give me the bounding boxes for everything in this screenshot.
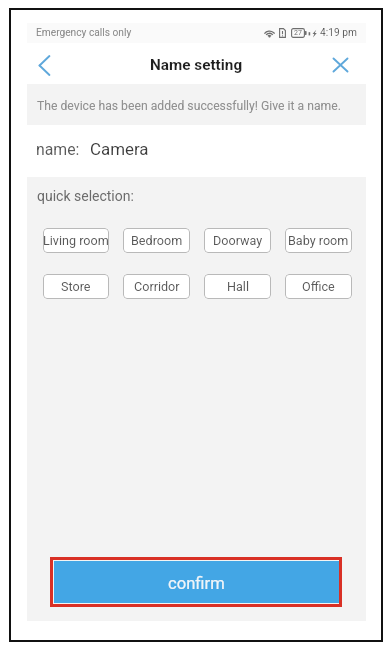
button[interactable]: Baby room <box>285 228 352 253</box>
staticText: The device has been added successfully! … <box>37 99 341 113</box>
button[interactable]: Corridor <box>123 274 190 299</box>
staticText: Name setting <box>150 56 243 74</box>
staticText: Camera <box>90 139 149 159</box>
button[interactable]: name: <box>27 125 366 177</box>
button[interactable]: Store <box>43 274 109 299</box>
button[interactable]: confirm <box>54 561 339 603</box>
staticText: Bedroom <box>131 233 183 248</box>
button[interactable]: Close <box>329 43 366 84</box>
staticText: 4:19 pm <box>320 27 357 39</box>
button[interactable]: Living room <box>43 228 109 253</box>
staticText: confirm <box>168 574 225 593</box>
button[interactable]: Bedroom <box>123 228 190 253</box>
staticText: Corridor <box>134 279 180 294</box>
staticText: Doorway <box>213 233 263 248</box>
staticText: Baby room <box>288 233 349 248</box>
staticText: name: <box>36 140 80 159</box>
button[interactable]: Office <box>285 274 352 299</box>
staticText: Hall <box>227 279 249 294</box>
staticText: Store <box>61 279 91 294</box>
staticText: 27 <box>294 29 302 37</box>
staticText: Office <box>302 279 335 294</box>
staticText: Living room <box>43 233 109 248</box>
button[interactable]: Back <box>27 43 65 84</box>
button[interactable]: Hall <box>204 274 271 299</box>
button[interactable]: Doorway <box>204 228 271 253</box>
staticText: Emergency calls only <box>36 27 132 39</box>
staticText: quick selection: <box>37 188 134 204</box>
